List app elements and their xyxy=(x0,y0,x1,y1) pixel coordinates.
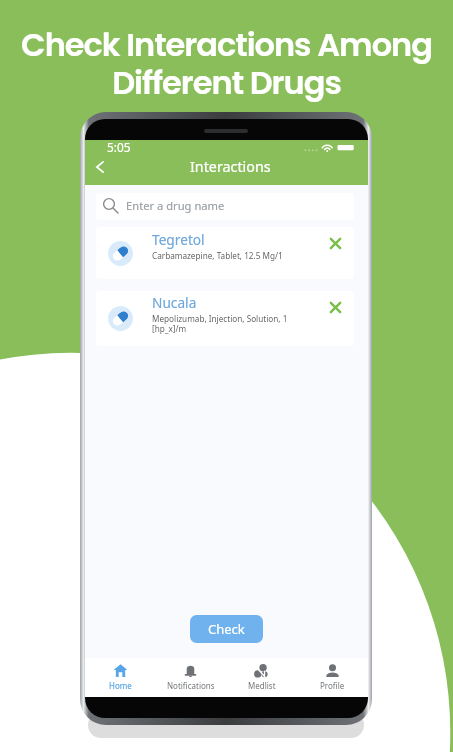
staticText: Nucala xyxy=(152,293,197,312)
staticText: Enter a drug name xyxy=(126,198,225,213)
staticText: Medlist xyxy=(248,680,276,691)
button[interactable]: Medlist xyxy=(226,658,297,697)
button[interactable]: Home xyxy=(85,658,155,697)
button[interactable]: Check xyxy=(190,615,263,643)
staticText: Carbamazepine, Tablet, 12.5 Mg/1 xyxy=(152,250,283,261)
staticText: Check Interactions Among Different Drugs xyxy=(21,22,432,105)
staticText: Check xyxy=(208,620,245,638)
staticText: Tegretol xyxy=(152,230,205,249)
button[interactable]: Remove xyxy=(323,231,347,255)
button[interactable]: Notifications xyxy=(155,658,226,697)
staticText: Notifications xyxy=(167,680,215,691)
button[interactable]: Remove xyxy=(323,295,347,319)
button[interactable]: Tegretol xyxy=(96,227,354,279)
button[interactable]: Nucala xyxy=(96,291,354,346)
staticText: Home xyxy=(109,680,132,691)
button[interactable]: Back xyxy=(86,153,114,181)
staticText: Interactions xyxy=(190,157,271,176)
staticText: Mepolizumab, Injection, Solution, 1 [hp_… xyxy=(152,313,288,334)
staticText: Profile xyxy=(320,680,345,691)
button[interactable]: Enter a drug name xyxy=(96,193,354,220)
staticText: 5:05 xyxy=(107,139,131,155)
button[interactable]: Profile xyxy=(297,658,368,697)
